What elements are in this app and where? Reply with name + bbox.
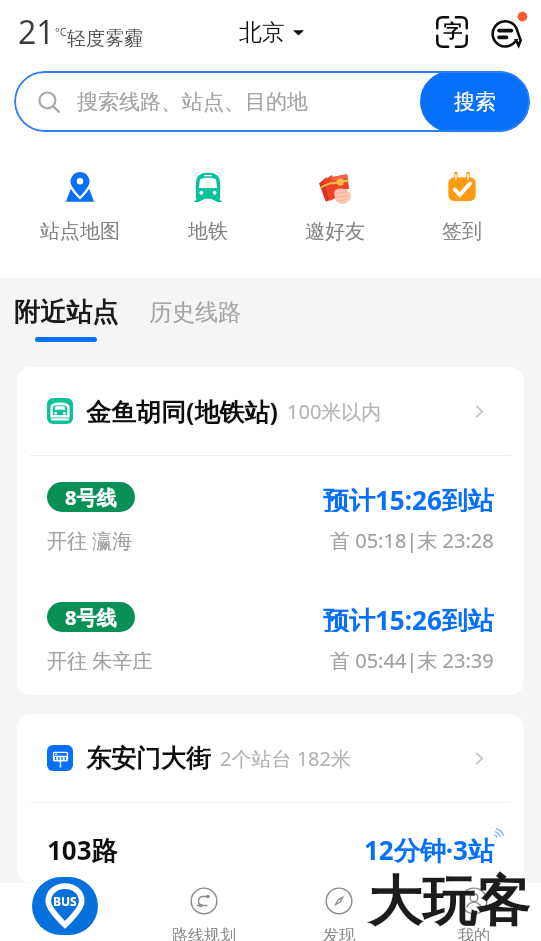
staticText: 搜索 (454, 89, 496, 115)
staticText: 开往 瀛海 (47, 527, 133, 554)
staticText: 8号线 (65, 604, 117, 631)
staticText: BUS (53, 893, 77, 909)
button[interactable]: 公交 (0, 883, 136, 941)
staticText: °C (55, 24, 67, 39)
staticText: 邀好友 (305, 219, 365, 244)
staticText: 东安门大街 (86, 743, 211, 774)
staticText: 预计15:26到站 (323, 602, 494, 632)
staticText: 地铁 (188, 219, 228, 244)
staticText: 轻度雾霾 (67, 27, 143, 51)
staticText: 21 (18, 10, 55, 54)
staticText: 大玩客 (368, 868, 530, 936)
staticText: 预计15:26到站 (323, 482, 494, 512)
staticText: 8号线 (65, 484, 117, 511)
button[interactable]: 地铁 (144, 132, 271, 244)
button[interactable]: 搜索线路、站点、目的地 (14, 71, 530, 132)
button[interactable]: 北京 (235, 14, 308, 51)
staticText: 我的 (458, 926, 490, 941)
staticText: 103路 (47, 832, 118, 868)
button[interactable]: 扫一扫翻译 (428, 8, 476, 56)
staticText: 路线规划 (172, 926, 236, 941)
button[interactable]: 东安门大街 (17, 714, 524, 802)
button[interactable]: 附近站点 (14, 300, 118, 346)
button[interactable]: 金鱼胡同(地铁站) (17, 367, 524, 455)
staticText: 12分钟·3站 (364, 832, 494, 868)
staticText: 首 05:18|末 23:28 (330, 527, 494, 554)
staticText: 北京 (239, 18, 285, 47)
staticText: 签到 (442, 219, 482, 244)
button[interactable]: 发现 (271, 883, 406, 941)
button[interactable]: 历史线路 (149, 308, 241, 337)
button[interactable]: 我的 (406, 883, 541, 941)
staticText: 开往 朱辛庄 (47, 647, 153, 674)
staticText: 首 05:44|末 23:39 (330, 647, 494, 674)
staticText: 2个站台 182米 (220, 745, 351, 772)
button[interactable]: 8号线 (17, 554, 524, 674)
staticText: 站点地图 (40, 219, 120, 244)
staticText: 发现 (323, 926, 355, 941)
button[interactable]: 103路 (17, 803, 524, 883)
staticText: 金鱼胡同(地铁站) (86, 394, 278, 428)
staticText: 100米以内 (287, 398, 382, 425)
staticText: 字 (443, 20, 462, 44)
staticText: 附近站点 (14, 296, 118, 329)
staticText: 搜索线路、站点、目的地 (77, 89, 308, 115)
button[interactable]: 消息 (484, 8, 532, 56)
button[interactable]: 签到 (398, 132, 525, 244)
button[interactable]: 8号线 (17, 456, 524, 554)
button[interactable]: 站点地图 (16, 132, 144, 244)
button[interactable]: 搜索 (420, 71, 530, 132)
staticText: 历史线路 (149, 298, 241, 327)
button[interactable]: 邀好友 (271, 132, 398, 244)
button[interactable]: 路线规划 (136, 883, 271, 941)
